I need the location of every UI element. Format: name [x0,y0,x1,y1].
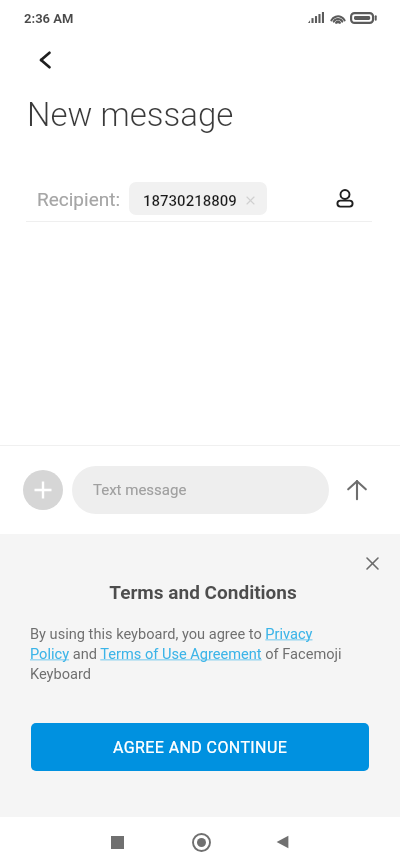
button[interactable]: Send [336,469,378,511]
button[interactable]: Close [356,547,388,579]
staticText: Recipient: [37,188,121,210]
button[interactable]: Add attachment [23,470,63,510]
button[interactable]: Recent apps [93,818,141,866]
staticText: By using this keyboard, you agree to Pri… [30,625,354,682]
button[interactable]: Text message [72,466,329,514]
staticText: 18730218809 [143,192,237,210]
staticText: Text message [93,481,187,499]
staticText: 2:36 AM [24,11,74,26]
button[interactable]: Choose contact [327,181,363,217]
button[interactable]: 18730218809 [129,182,267,215]
staticText: Terms and Conditions [3,581,400,603]
staticText: AGREE AND CONTINUE [113,738,288,757]
button[interactable]: Back [258,818,306,866]
button[interactable]: Home [177,818,225,866]
button[interactable]: Back [25,40,64,79]
staticText: New message [27,95,234,134]
button[interactable]: AGREE AND CONTINUE [31,723,369,771]
